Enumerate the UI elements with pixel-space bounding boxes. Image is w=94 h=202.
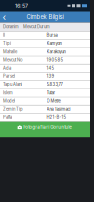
staticText: Zemin Tip [3,107,23,112]
staticText: 145 [46,66,54,71]
staticText: Bursa [46,33,57,38]
staticText: 16:57 [15,2,28,9]
staticText: Model [3,98,15,103]
staticText: 139 [46,74,54,79]
staticText: 5.833,77 [46,82,62,87]
staticText: Tutar [46,90,55,95]
staticText: Donanim [3,24,19,29]
staticText: Islem [3,90,13,95]
button[interactable]: Back [0,11,9,22]
staticText: 190585 [46,57,63,62]
staticText: Fotograflari Goruntule [23,124,72,130]
staticText: Mahalle [3,49,17,54]
staticText: Karakoyun [46,49,65,54]
staticText: Mevcut Durum [23,24,50,29]
staticText: Tipi [3,41,11,46]
staticText: H21-B-15 [46,115,66,120]
staticText: Ana Tasimaci [46,107,70,112]
staticText: Cimbek Bilgisi [26,13,63,20]
staticText: Parsel [3,74,15,79]
staticText: Ada [3,66,11,71]
staticText: ‹ [2,11,6,23]
staticText: Kamyon [46,41,61,46]
staticText: O Metre [46,98,60,103]
button[interactable]: Fotograflari Goruntule [0,122,90,137]
staticText: Tapu Alani [3,82,22,87]
staticText: Mevcut No [3,57,22,62]
staticText: Il [3,33,5,38]
staticText: Pafta [3,115,12,120]
